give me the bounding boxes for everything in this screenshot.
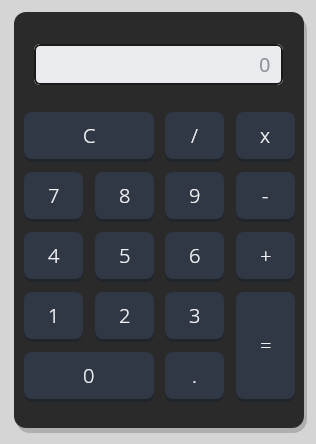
button[interactable]: 9 [165, 172, 224, 219]
button[interactable]: 1 [24, 292, 83, 339]
button[interactable]: + [236, 232, 295, 279]
button[interactable]: / [165, 112, 224, 159]
staticText: 0 [83, 362, 95, 389]
button[interactable]: 7 [24, 172, 83, 219]
staticText: 1 [48, 302, 60, 329]
button[interactable]: = [236, 292, 295, 399]
staticText: . [192, 362, 197, 389]
staticText: 4 [48, 242, 60, 269]
button[interactable]: - [236, 172, 295, 219]
staticText: 6 [189, 242, 201, 269]
staticText: 3 [189, 302, 201, 329]
staticText: x [260, 122, 271, 149]
staticText: 7 [48, 182, 60, 209]
staticText: 8 [119, 182, 131, 209]
button[interactable]: 8 [95, 172, 154, 219]
button[interactable]: 6 [165, 232, 224, 279]
button[interactable]: 3 [165, 292, 224, 339]
button[interactable]: 5 [95, 232, 154, 279]
button[interactable]: 0 [24, 352, 154, 399]
staticText: + [260, 242, 272, 269]
button[interactable]: 4 [24, 232, 83, 279]
button[interactable]: x [236, 112, 295, 159]
staticText: C [83, 122, 96, 149]
button[interactable]: . [165, 352, 224, 399]
staticText: = [260, 332, 272, 359]
staticText: 9 [189, 182, 201, 209]
button[interactable]: 2 [95, 292, 154, 339]
staticText: 0 [259, 51, 271, 78]
staticText: / [191, 122, 198, 149]
button[interactable]: C [24, 112, 154, 159]
staticText: 2 [119, 302, 131, 329]
staticText: - [262, 182, 269, 209]
staticText: 5 [119, 242, 131, 269]
